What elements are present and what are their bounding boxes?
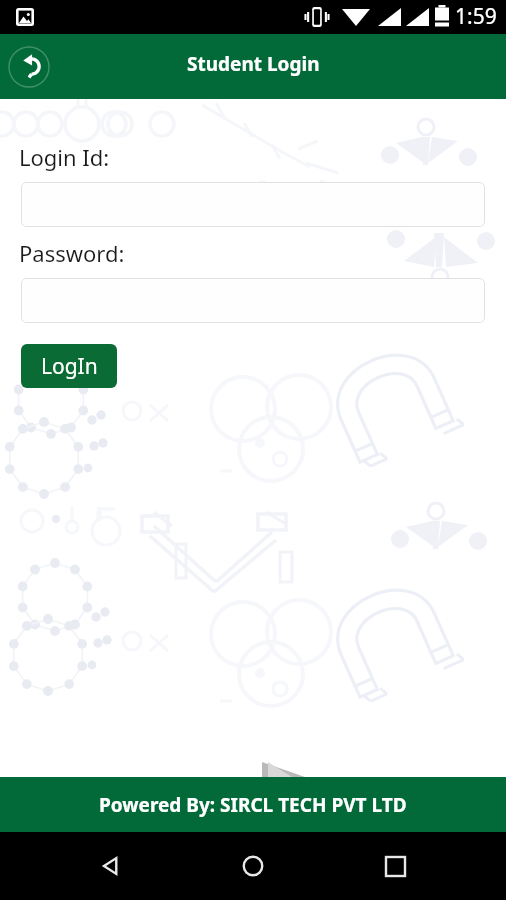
staticText: Login Id: [19, 142, 110, 172]
staticText: Powered By: SIRCL TECH PVT LTD [99, 792, 407, 818]
button[interactable]: Back [7, 45, 51, 89]
button[interactable]: Recents [372, 843, 418, 889]
staticText: Student Login [187, 51, 320, 77]
staticText: Password: [19, 238, 125, 268]
button[interactable] [21, 278, 485, 323]
button[interactable]: Powered By: SIRCL TECH PVT LTD [0, 777, 506, 832]
staticText: LogIn [41, 352, 98, 381]
staticText: 1:59 [455, 2, 497, 31]
button[interactable]: Home [230, 843, 276, 889]
button[interactable] [21, 182, 485, 227]
button[interactable]: LogIn [21, 344, 117, 388]
button[interactable]: Back [88, 843, 134, 889]
